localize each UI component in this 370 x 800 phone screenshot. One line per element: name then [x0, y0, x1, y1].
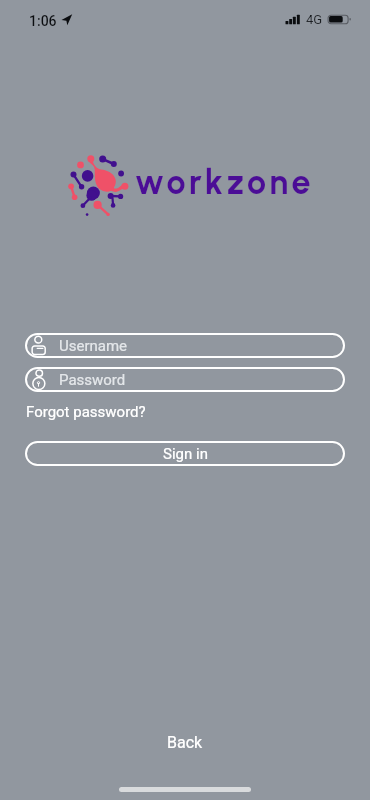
button[interactable]: Username — [25, 333, 345, 358]
staticText: 1:06 — [29, 13, 57, 29]
staticText: Username — [59, 337, 128, 355]
staticText: Sign in — [163, 445, 208, 463]
button[interactable]: Password — [25, 367, 345, 392]
staticText: Back — [167, 733, 203, 752]
staticText: Password — [59, 371, 126, 389]
staticText: workzone — [135, 162, 315, 203]
button[interactable]: Sign in — [25, 441, 345, 466]
staticText: Forgot password? — [26, 403, 146, 421]
staticText: 4G — [306, 12, 323, 27]
button[interactable]: Back — [163, 729, 207, 756]
button[interactable]: Forgot password? — [25, 401, 147, 423]
